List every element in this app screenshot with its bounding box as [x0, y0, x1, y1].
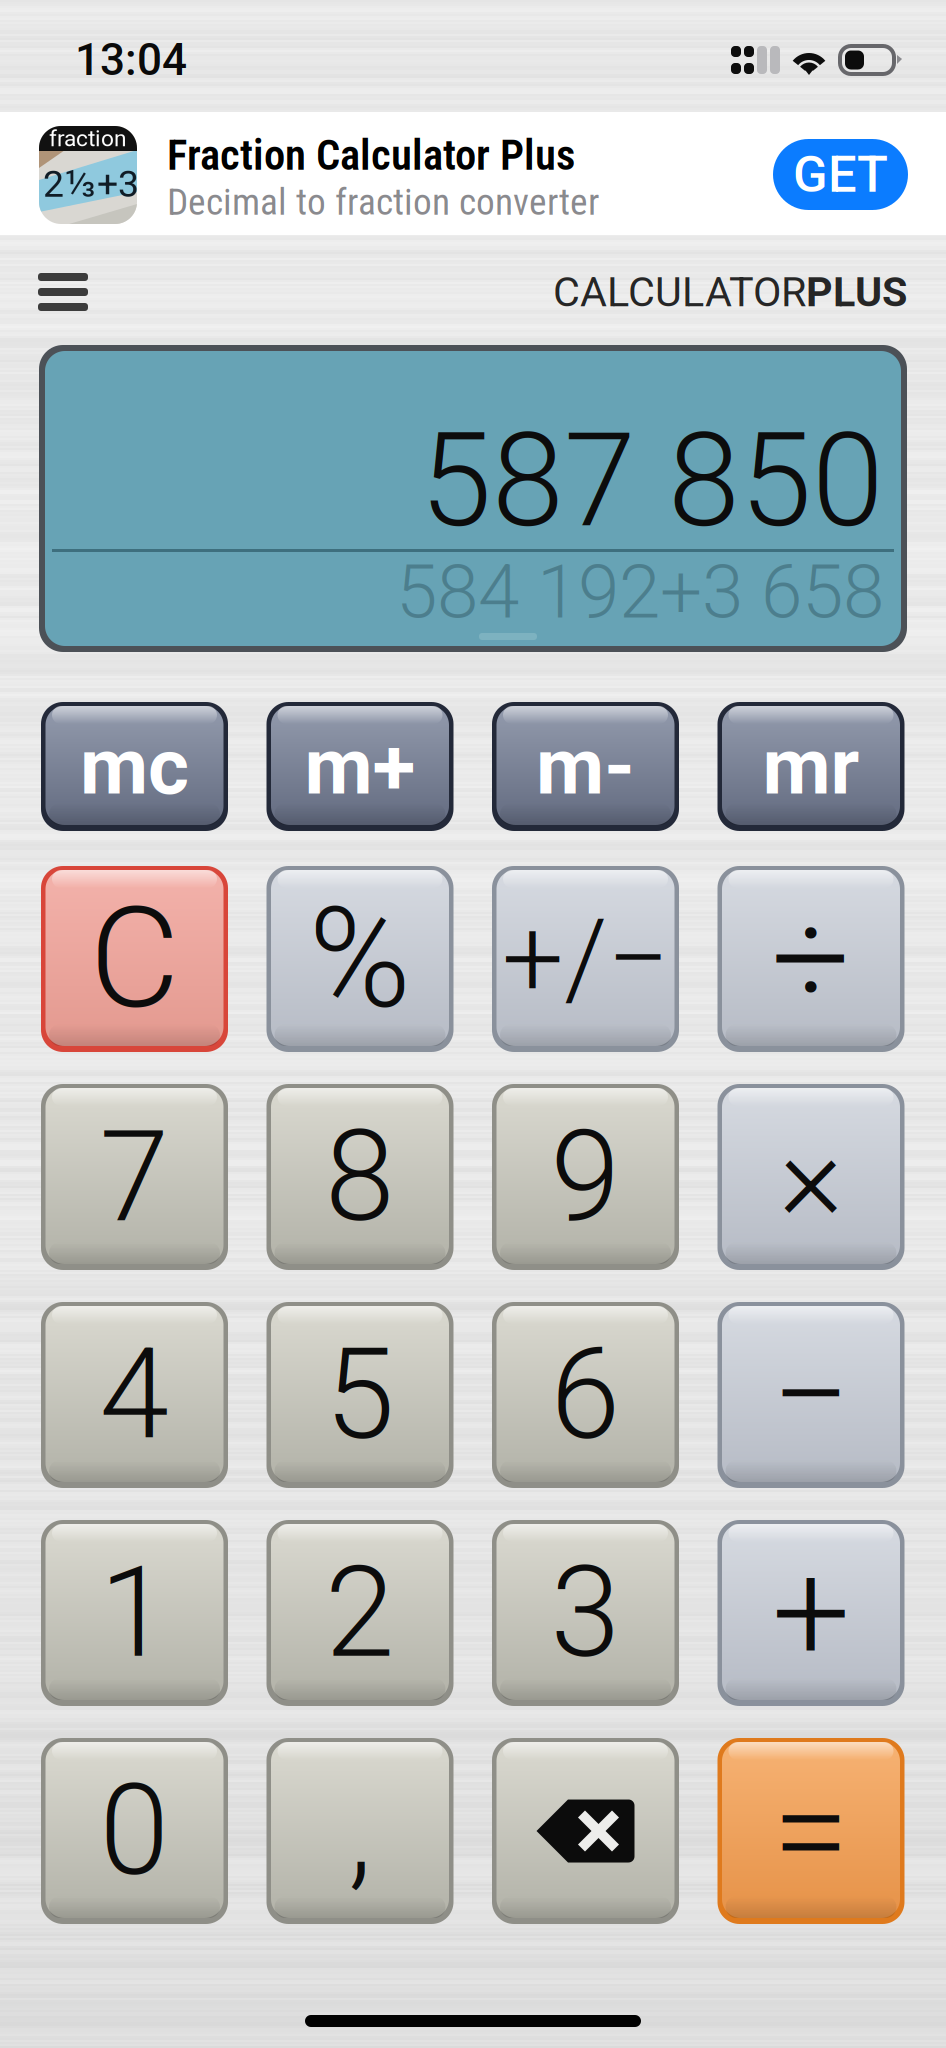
staticText: , — [348, 1758, 372, 1904]
button[interactable]: − — [717, 1302, 904, 1488]
staticText: 7 — [99, 1104, 169, 1250]
button[interactable]: C — [41, 866, 228, 1052]
staticText: 5 — [325, 1322, 395, 1468]
staticText: × — [779, 1105, 843, 1249]
button[interactable]: 0 — [41, 1738, 228, 1924]
staticText: − — [771, 1314, 850, 1476]
button[interactable]: +/− — [492, 866, 679, 1052]
button[interactable]: % — [266, 866, 453, 1052]
staticText: 6 — [550, 1322, 620, 1468]
button[interactable]: 8 — [266, 1084, 453, 1270]
staticText: fraction — [49, 125, 127, 152]
staticText: 584 192+3 658 — [396, 548, 884, 636]
button[interactable]: 2 — [266, 1520, 453, 1706]
button[interactable]: 5 — [266, 1302, 453, 1488]
staticText: Fraction Calculator Plus — [167, 130, 575, 180]
button[interactable]: , — [266, 1738, 453, 1924]
staticText: 1 — [99, 1540, 169, 1686]
staticText: 2⅓+3¾ — [43, 162, 168, 206]
staticText: 2 — [325, 1540, 395, 1686]
staticText: mr — [762, 720, 859, 813]
staticText: 0 — [99, 1758, 169, 1904]
staticText: GET — [793, 145, 888, 204]
staticText: 13:04 — [75, 34, 187, 86]
button[interactable]: 3 — [492, 1520, 679, 1706]
button[interactable]: 2⅓+3¾ — [0, 112, 946, 235]
staticText: 3 — [550, 1540, 620, 1686]
staticText: 8 — [325, 1104, 395, 1250]
button[interactable]: = — [717, 1738, 904, 1924]
button[interactable]: mc — [41, 702, 228, 831]
staticText: CALCULATOR — [553, 268, 806, 316]
button[interactable]: mr — [717, 702, 904, 831]
staticText: ÷ — [771, 878, 850, 1040]
staticText: = — [772, 1750, 849, 1912]
staticText: % — [308, 878, 411, 1040]
staticText: 4 — [99, 1322, 169, 1468]
staticText: 587 850 — [420, 405, 884, 557]
button[interactable]: 6 — [492, 1302, 679, 1488]
button[interactable]: ÷ — [717, 866, 904, 1052]
button[interactable]: 9 — [492, 1084, 679, 1270]
button[interactable]: m- — [492, 702, 679, 831]
staticText: + — [772, 1532, 850, 1694]
staticText: C — [89, 878, 179, 1040]
staticText: Decimal to fraction converter — [167, 180, 599, 224]
staticText: mc — [80, 720, 189, 813]
staticText: m- — [536, 720, 635, 813]
button[interactable]: + — [717, 1520, 904, 1706]
button[interactable]: Delete — [492, 1738, 679, 1924]
staticText: m+ — [304, 720, 415, 813]
staticText: +/− — [502, 895, 669, 1023]
button[interactable]: Menu — [25, 262, 101, 322]
staticText: 9 — [550, 1104, 620, 1250]
staticText: PLUS — [806, 268, 907, 316]
button[interactable]: 1 — [41, 1520, 228, 1706]
button[interactable]: × — [717, 1084, 904, 1270]
button[interactable]: m+ — [266, 702, 453, 831]
button[interactable]: 4 — [41, 1302, 228, 1488]
button[interactable]: 7 — [41, 1084, 228, 1270]
